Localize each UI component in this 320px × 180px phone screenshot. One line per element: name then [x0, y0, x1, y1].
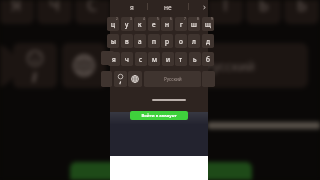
- staticText: Войти в аккаунт: [141, 113, 177, 119]
- button[interactable]: а: [134, 34, 146, 48]
- staticText: н: [165, 20, 169, 29]
- staticText: ц: [111, 20, 115, 29]
- button[interactable]: ы: [107, 34, 119, 48]
- button[interactable]: г: [175, 17, 187, 31]
- staticText: в: [125, 37, 129, 46]
- button[interactable]: д: [202, 34, 214, 48]
- staticText: к: [138, 20, 142, 29]
- button[interactable]: Русский: [144, 71, 201, 87]
- staticText: Т: [221, 0, 230, 16]
- staticText: Я: [11, 0, 22, 16]
- staticText: 2: [116, 17, 118, 21]
- staticText: у: [125, 20, 129, 29]
- staticText: ы: [111, 37, 116, 46]
- staticText: а: [138, 37, 142, 46]
- button[interactable]: т: [175, 52, 187, 66]
- button[interactable]: ц: [107, 17, 119, 31]
- staticText: ч: [125, 55, 129, 64]
- staticText: и: [166, 55, 171, 64]
- staticText: 8: [197, 17, 199, 21]
- button[interactable]: л: [188, 34, 200, 48]
- button[interactable]: м: [148, 52, 160, 66]
- button[interactable]: с: [135, 52, 147, 66]
- button[interactable]: н: [161, 17, 173, 31]
- staticText: 4: [143, 17, 145, 21]
- staticText: г: [180, 20, 183, 29]
- staticText: С: [87, 0, 98, 16]
- button[interactable]: щ: [202, 17, 214, 31]
- staticText: я: [130, 3, 134, 12]
- button[interactable]: More suggestions: [200, 0, 208, 15]
- button[interactable]: у: [121, 17, 133, 31]
- staticText: р: [165, 37, 169, 46]
- staticText: не: [164, 3, 172, 12]
- button[interactable]: не: [154, 0, 182, 15]
- button[interactable]: Emoji: [114, 71, 127, 87]
- button[interactable]: о: [175, 34, 187, 48]
- button[interactable]: я: [108, 52, 120, 66]
- button[interactable]: б: [202, 52, 214, 66]
- button[interactable]: Shift: [101, 51, 114, 65]
- staticText: е: [152, 20, 156, 29]
- staticText: 9: [211, 17, 213, 21]
- button[interactable]: ь: [189, 52, 201, 66]
- button[interactable]: е: [148, 17, 160, 31]
- staticText: 5: [157, 17, 159, 21]
- staticText: Ь: [259, 0, 269, 16]
- staticText: п: [152, 37, 156, 46]
- button[interactable]: р: [161, 34, 173, 48]
- button[interactable]: в: [121, 34, 133, 48]
- staticText: м: [152, 55, 157, 64]
- staticText: т: [179, 55, 183, 64]
- staticText: щ: [205, 20, 211, 29]
- staticText: Русский: [205, 57, 255, 75]
- button[interactable]: к: [134, 17, 146, 31]
- button[interactable]: и: [162, 52, 174, 66]
- button[interactable]: ш: [188, 17, 200, 31]
- staticText: Б: [297, 0, 307, 16]
- button[interactable]: п: [148, 34, 160, 48]
- staticText: 6: [170, 17, 172, 21]
- staticText: б: [206, 55, 210, 64]
- staticText: ь: [193, 55, 197, 64]
- staticText: 3: [130, 17, 132, 21]
- button[interactable]: Change keyboard language: [128, 71, 142, 87]
- staticText: ш: [191, 20, 197, 29]
- staticText: 7: [184, 17, 186, 21]
- staticText: д: [206, 37, 210, 46]
- staticText: я: [112, 55, 116, 64]
- staticText: с: [139, 55, 143, 64]
- staticText: Ч: [49, 0, 60, 16]
- staticText: о: [179, 37, 183, 46]
- staticText: л: [192, 37, 196, 46]
- staticText: Русский: [164, 76, 182, 82]
- button[interactable]: Войти в аккаунт: [130, 111, 188, 120]
- button[interactable]: ч: [121, 52, 133, 66]
- button[interactable]: я: [118, 0, 146, 15]
